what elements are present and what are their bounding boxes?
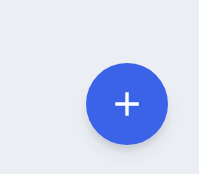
button[interactable]: Add [86,63,168,145]
